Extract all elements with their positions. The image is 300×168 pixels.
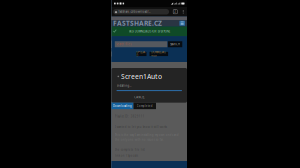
button[interactable]: CANCEL bbox=[132, 94, 147, 100]
button[interactable]: FAST DOWNLOADS FOR EVERYONE bbox=[111, 26, 187, 36]
staticText: link on T Specials bbox=[115, 154, 138, 157]
staticText: This is the way I am installing my own o… bbox=[115, 133, 179, 137]
staticText: Playlist ID: 3829111 bbox=[115, 115, 145, 118]
staticText: UPLOAD bbox=[136, 50, 146, 58]
button[interactable]: Completed bbox=[133, 103, 156, 109]
button[interactable]: Tabs bbox=[173, 10, 177, 14]
staticText: search files bbox=[116, 42, 131, 46]
staticText: Downloading bbox=[113, 104, 132, 108]
staticText: FAST DOWNLOADS FOR EVERYONE bbox=[129, 30, 170, 33]
staticText: fastshare.cz/download/… bbox=[118, 10, 150, 13]
staticText: Screen1Auto bbox=[121, 72, 162, 81]
staticText: CANCEL bbox=[134, 95, 144, 99]
button[interactable]: Downloading bbox=[111, 103, 133, 109]
button[interactable]: SEARCH bbox=[168, 41, 182, 47]
button[interactable]: DOWNLOAD FILES bbox=[149, 52, 168, 56]
button[interactable]: UPLOAD bbox=[136, 52, 146, 56]
staticText: 2 bbox=[174, 10, 176, 13]
button[interactable]: search files bbox=[115, 41, 167, 47]
button[interactable]: Open menu bbox=[179, 21, 185, 26]
staticText: SEARCH bbox=[170, 42, 180, 46]
staticText: the complete file list bbox=[115, 148, 145, 151]
staticText: DOWNLOAD FILES bbox=[151, 50, 166, 58]
staticText: Completed bbox=[137, 104, 153, 108]
staticText: Installing… bbox=[116, 84, 131, 88]
staticText: FASTSHARE.CZ bbox=[113, 19, 162, 28]
button[interactable]: fastshare.cz/download/… bbox=[113, 9, 169, 14]
staticText: I wanted to let you know it still works bbox=[115, 125, 167, 129]
button[interactable]: More options bbox=[181, 9, 185, 14]
